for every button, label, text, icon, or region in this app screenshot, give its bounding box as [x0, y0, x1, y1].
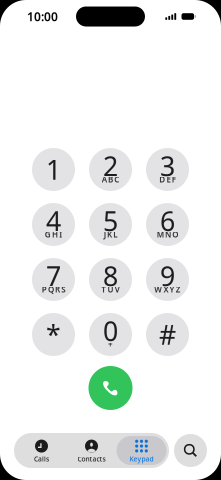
- button[interactable]: 3: [146, 148, 189, 191]
- staticText: #: [159, 317, 176, 352]
- staticText: Q: [48, 284, 54, 295]
- staticText: E: [166, 174, 170, 185]
- staticText: G: [45, 229, 51, 240]
- staticText: 9: [160, 258, 175, 294]
- staticText: 1: [46, 152, 61, 187]
- staticText: 4: [46, 203, 61, 239]
- button[interactable]: 0: [89, 313, 132, 356]
- button[interactable]: Contacts: [66, 433, 116, 468]
- staticText: L: [113, 229, 117, 240]
- staticText: H: [52, 229, 58, 240]
- staticText: K: [107, 229, 112, 240]
- staticText: P: [42, 284, 47, 295]
- staticText: 5: [103, 203, 118, 239]
- staticText: B: [108, 174, 113, 185]
- staticText: V: [115, 284, 120, 295]
- staticText: Z: [176, 284, 181, 295]
- button[interactable]: 6: [146, 203, 189, 246]
- staticText: N: [165, 229, 171, 240]
- button[interactable]: Keypad: [116, 433, 166, 468]
- staticText: 8: [103, 258, 118, 294]
- staticText: X: [163, 284, 168, 295]
- button[interactable]: 9: [146, 258, 189, 301]
- staticText: I: [59, 229, 62, 240]
- staticText: Y: [170, 284, 175, 295]
- staticText: 2: [103, 148, 118, 184]
- button[interactable]: 8: [89, 258, 132, 301]
- button[interactable]: 1: [32, 148, 75, 191]
- button[interactable]: 4: [32, 203, 75, 246]
- staticText: F: [172, 174, 176, 185]
- staticText: +: [108, 339, 113, 350]
- staticText: Calls: [34, 455, 49, 463]
- staticText: Keypad: [129, 455, 153, 463]
- staticText: M: [157, 229, 164, 240]
- staticText: O: [172, 229, 178, 240]
- staticText: Contacts: [77, 455, 105, 463]
- staticText: 6: [160, 203, 175, 239]
- button[interactable]: Calls: [16, 433, 66, 468]
- staticText: D: [159, 174, 165, 185]
- staticText: 3: [160, 148, 175, 184]
- button[interactable]: 2: [89, 148, 132, 191]
- button[interactable]: 5: [89, 203, 132, 246]
- staticText: S: [61, 284, 65, 295]
- staticText: A: [102, 174, 107, 185]
- staticText: *: [46, 317, 61, 352]
- button[interactable]: Call: [88, 366, 132, 410]
- button[interactable]: 7: [32, 258, 75, 301]
- button[interactable]: *: [32, 313, 75, 356]
- staticText: W: [154, 284, 162, 295]
- button[interactable]: Search: [174, 434, 207, 467]
- button[interactable]: #: [146, 313, 189, 356]
- staticText: U: [107, 284, 113, 295]
- staticText: C: [114, 174, 119, 185]
- staticText: 10:00: [27, 9, 58, 25]
- staticText: R: [55, 284, 60, 295]
- staticText: J: [104, 229, 106, 240]
- staticText: T: [101, 284, 106, 295]
- staticText: 7: [46, 258, 61, 294]
- staticText: 0: [103, 313, 118, 349]
